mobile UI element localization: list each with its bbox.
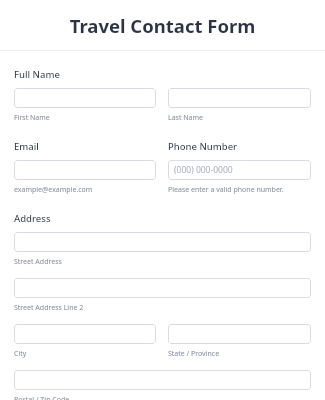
staticText: Postal / Zip Code [14,395,70,400]
staticText: State / Province [168,349,220,359]
button[interactable]: Email [14,160,156,180]
button[interactable]: City [14,324,156,344]
staticText: Full Name [14,68,60,81]
staticText: Email [14,140,39,153]
button[interactable]: State / Province [168,324,311,344]
button[interactable]: Phone Number [168,160,311,180]
staticText: First Name [14,113,50,123]
staticText: Street Address Line 2 [14,303,84,313]
staticText: Phone Number [168,140,238,153]
staticText: (000) 000-0000 [174,164,233,176]
staticText: Travel Contact Form [0,13,325,38]
button[interactable]: Street Address Line 2 [14,278,311,298]
button[interactable]: Street Address [14,232,311,252]
button[interactable]: Last Name [168,88,311,108]
staticText: Please enter a valid phone number. [168,185,284,195]
staticText: Address [14,212,51,225]
button[interactable]: Postal / Zip Code [14,370,311,390]
staticText: Last Name [168,113,204,123]
staticText: Street Address [14,257,62,267]
button[interactable]: First Name [14,88,156,108]
staticText: example@example.com [14,185,93,195]
staticText: City [14,349,27,359]
